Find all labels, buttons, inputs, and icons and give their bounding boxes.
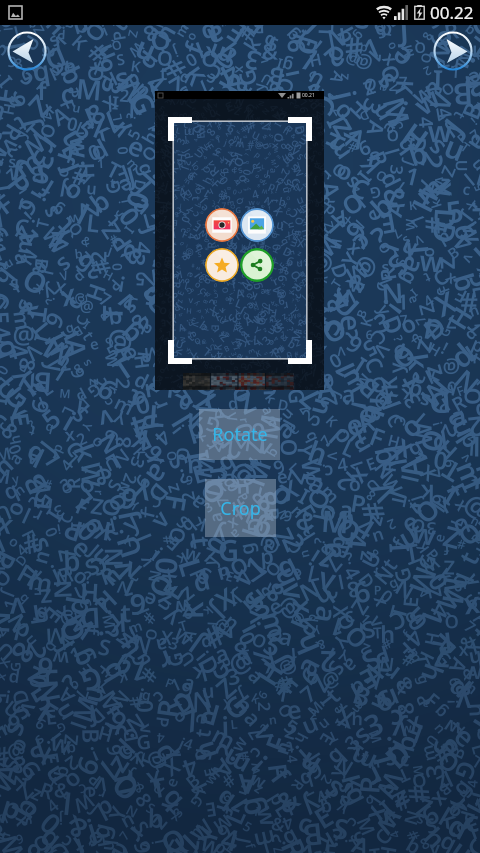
button[interactable]: Next xyxy=(429,27,477,75)
button[interactable]: Favourites xyxy=(205,248,239,282)
button[interactable]: Rotate xyxy=(199,409,280,460)
button[interactable]: Crop xyxy=(205,479,276,537)
button[interactable]: Gallery xyxy=(240,208,274,242)
button[interactable]: Camera xyxy=(205,208,239,242)
button[interactable]: Previous xyxy=(3,27,51,75)
staticText: Rotate xyxy=(212,422,268,447)
staticText: Crop xyxy=(220,496,261,521)
staticText: 00.22 xyxy=(430,1,474,24)
button[interactable]: Share xyxy=(240,248,274,282)
